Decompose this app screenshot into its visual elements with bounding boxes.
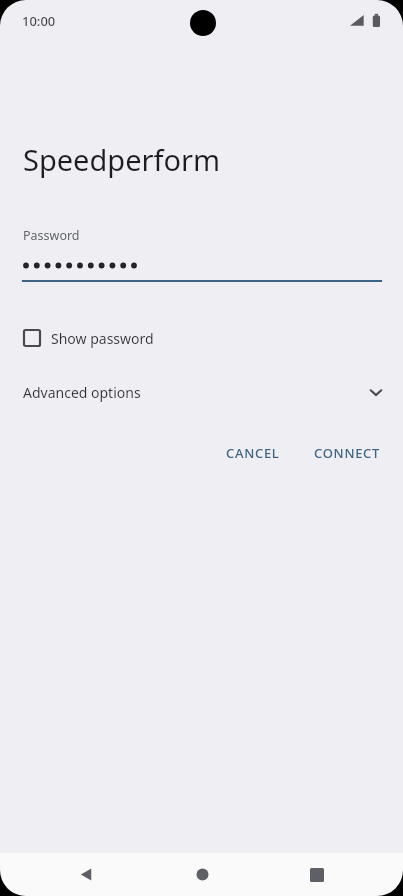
button[interactable]: CONNECT: [302, 436, 393, 470]
button[interactable]: Advanced options: [0, 374, 403, 410]
button[interactable]: Show password: [18, 321, 154, 355]
button[interactable]: Back: [57, 853, 115, 896]
button[interactable]: Recent apps: [288, 853, 346, 896]
button[interactable]: Home: [173, 853, 231, 896]
staticText: Advanced options: [23, 383, 141, 402]
staticText: CONNECT: [314, 444, 381, 462]
button[interactable]: CANCEL: [214, 436, 292, 470]
staticText: CANCEL: [226, 444, 280, 462]
button[interactable]: [0, 258, 403, 285]
staticText: Speedperform: [23, 140, 221, 179]
staticText: Show password: [51, 329, 154, 348]
other: Expand advanced options: [365, 381, 387, 403]
staticText: 10:00: [22, 12, 56, 30]
staticText: Password: [23, 227, 80, 244]
